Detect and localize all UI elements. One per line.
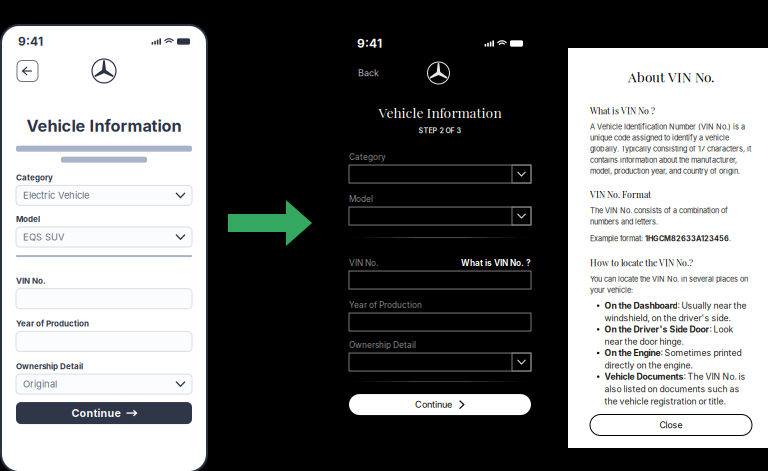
button[interactable]: Back	[358, 64, 379, 82]
button[interactable]	[349, 271, 531, 289]
staticText: Electric Vehicle	[23, 190, 89, 201]
button[interactable]: Close	[590, 414, 752, 435]
button[interactable]	[349, 353, 531, 371]
staticText: Ownership Detail	[349, 340, 416, 350]
staticText: What is VIN No ?	[590, 105, 655, 116]
button[interactable]: Electric Vehicle	[16, 185, 192, 205]
button[interactable]	[349, 207, 531, 225]
staticText: Model	[16, 214, 40, 224]
button[interactable]	[16, 289, 192, 309]
staticText: Close	[659, 420, 682, 430]
staticText: VIN No. Format	[590, 188, 651, 200]
button[interactable]	[16, 331, 192, 351]
staticText: On the Engine: Sometimes printed directl…	[604, 348, 741, 370]
button[interactable]	[349, 165, 531, 183]
staticText: 9:41	[18, 34, 43, 49]
staticText: Continue	[415, 399, 452, 410]
staticText: Model	[349, 194, 373, 204]
staticText: Category	[349, 152, 386, 162]
button[interactable]: Continue	[16, 402, 192, 424]
staticText: On the Dashboard: Usually near the winds…	[604, 300, 746, 323]
button[interactable]: Original	[16, 374, 192, 394]
staticText: A Vehicle Identification Number (VIN No.…	[590, 122, 751, 175]
staticText: Year of Production	[349, 300, 422, 310]
button[interactable]	[349, 313, 531, 331]
staticText: Back	[358, 67, 379, 78]
staticText: Original	[23, 378, 57, 390]
staticText: Category	[16, 173, 53, 182]
staticText: VIN No.	[16, 276, 46, 286]
staticText: Example format: 1HGCM82633A123456.	[590, 234, 731, 243]
staticText: Continue	[71, 407, 120, 419]
staticText: STEP 2 OF 3	[418, 126, 461, 135]
staticText: VIN No.	[349, 258, 378, 268]
staticText: About VIN No.	[628, 67, 714, 86]
staticText: Vehicle Information	[26, 116, 181, 136]
staticText: What is VIN No. ?	[461, 258, 531, 268]
staticText: Year of Production	[16, 319, 89, 328]
staticText: 9:41	[357, 36, 382, 51]
staticText: On the Driver's Side Door: Look near the…	[604, 324, 733, 347]
staticText: How to locate the VIN No.?	[590, 257, 693, 268]
staticText: Ownership Detail	[16, 361, 83, 371]
button[interactable]: Continue	[349, 394, 531, 415]
staticText: EQS SUV	[23, 231, 64, 243]
button[interactable]: EQS SUV	[16, 227, 192, 247]
staticText: You can locate the VIN No. in several pl…	[590, 275, 748, 294]
staticText: The VIN No. consists of a combination of…	[590, 206, 728, 226]
staticText: Vehicle Documents: The VIN No. is also l…	[604, 371, 745, 406]
staticText: Vehicle Information	[378, 103, 501, 121]
button[interactable]: Back	[17, 60, 38, 81]
button[interactable]: What is VIN No. ?	[461, 258, 531, 268]
